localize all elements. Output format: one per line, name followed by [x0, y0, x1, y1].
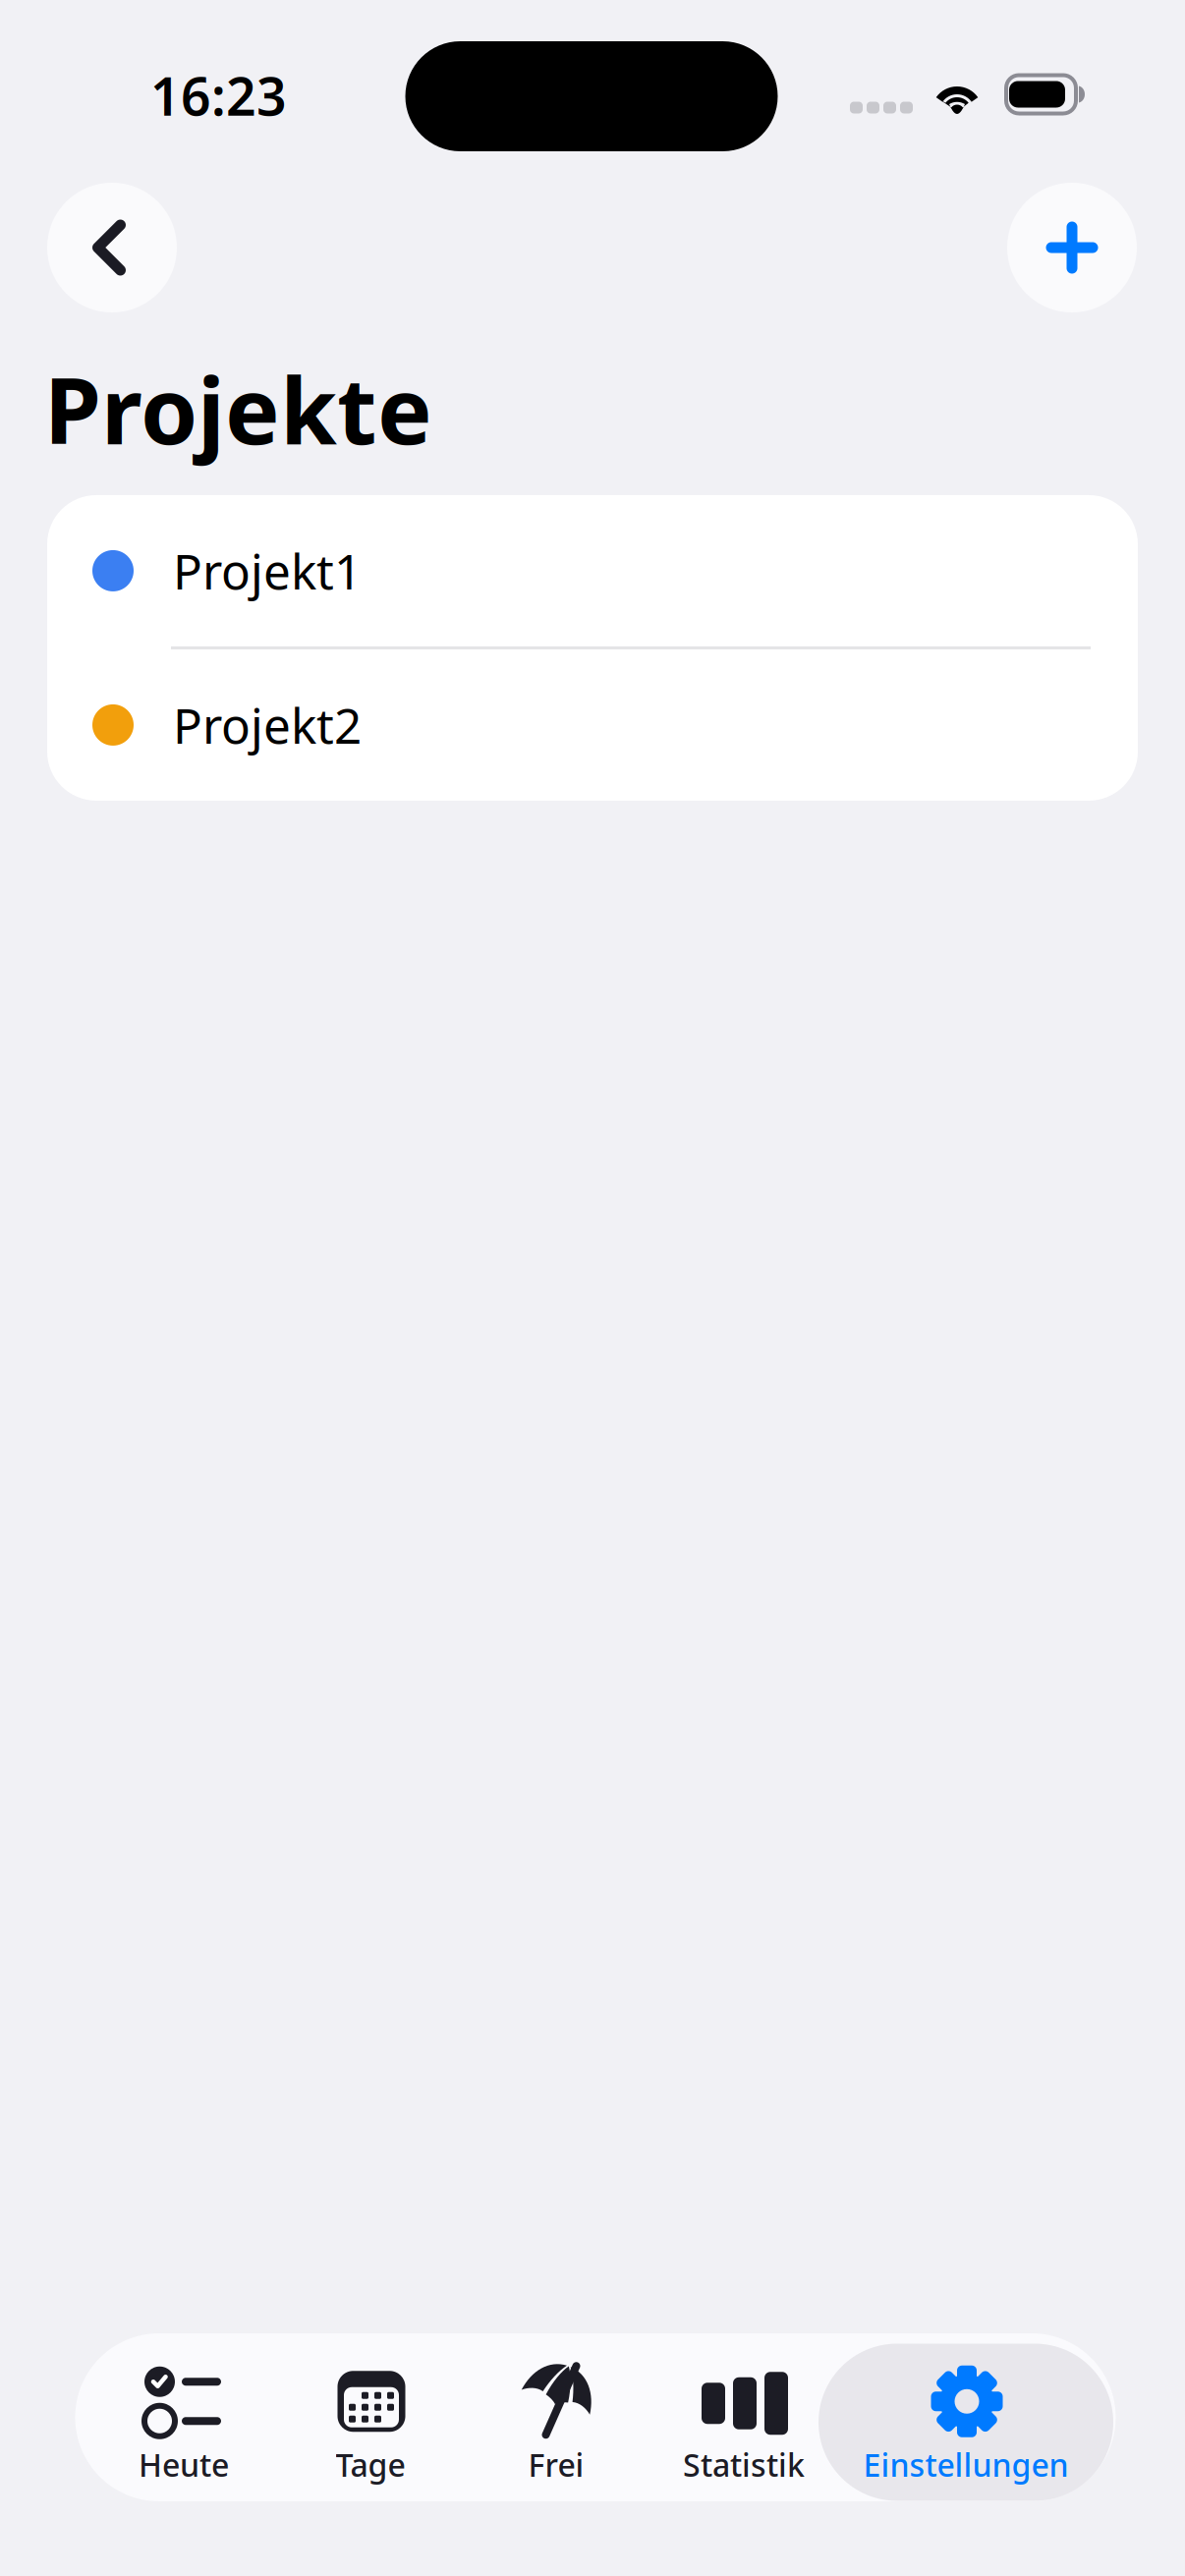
button[interactable]: Projekt2 — [47, 649, 1138, 801]
staticText: Statistik — [683, 2444, 805, 2485]
staticText: Projekte — [44, 348, 432, 470]
button[interactable]: Tage — [292, 2344, 449, 2501]
button[interactable]: Add — [1007, 183, 1137, 312]
button[interactable]: Back — [47, 183, 177, 312]
staticText: Einstellungen — [863, 2444, 1069, 2485]
staticText: Projekt1 — [173, 539, 362, 603]
staticText: Projekt2 — [173, 693, 362, 757]
button[interactable]: Heute — [95, 2344, 272, 2501]
staticText: Heute — [139, 2444, 229, 2485]
staticText: Frei — [528, 2444, 584, 2485]
button[interactable]: Frei — [478, 2344, 635, 2501]
button[interactable]: Statistik — [650, 2344, 837, 2501]
staticText: 16:23 — [150, 61, 287, 130]
staticText: Tage — [336, 2444, 405, 2485]
button[interactable]: Projekt1 — [47, 495, 1138, 646]
button[interactable]: Einstellungen — [818, 2344, 1113, 2501]
